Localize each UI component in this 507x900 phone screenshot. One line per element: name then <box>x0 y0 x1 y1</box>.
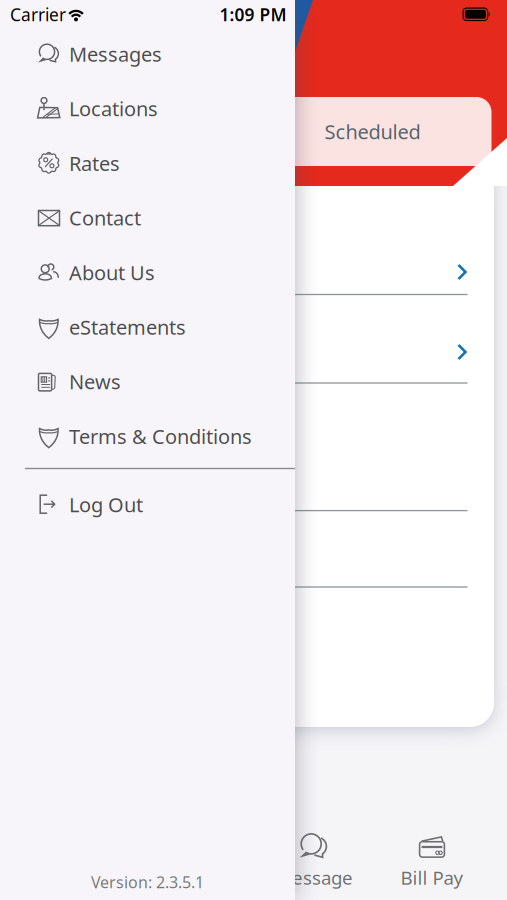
staticText: Rates <box>69 150 120 176</box>
button[interactable]: Message <box>258 825 370 897</box>
staticText: News <box>69 368 121 395</box>
button[interactable]: Bill Pay <box>376 825 488 897</box>
staticText: Locations <box>69 95 158 122</box>
staticText: Accounts <box>30 865 111 890</box>
button[interactable]: Log Out <box>0 477 295 532</box>
button[interactable]: Select account <box>32 295 467 382</box>
button[interactable]: News <box>0 354 295 409</box>
staticText: Contact <box>69 204 141 231</box>
button[interactable]: Select payee <box>32 231 467 294</box>
staticText: Terms & Conditions <box>69 423 252 449</box>
button[interactable]: Messages <box>0 27 295 81</box>
button[interactable]: Terms & Conditions <box>0 409 295 463</box>
staticText: About Us <box>69 259 155 286</box>
button[interactable]: Accounts <box>15 825 127 897</box>
button[interactable]: Locations <box>0 81 295 136</box>
staticText: Transfer <box>158 865 230 890</box>
button[interactable]: Scheduled <box>254 97 491 166</box>
staticText: Message <box>275 865 353 890</box>
staticText: Log Out <box>69 491 143 518</box>
staticText: Version: 2.3.5.1 <box>91 871 204 893</box>
button[interactable]: Transfer <box>138 825 250 897</box>
button[interactable]: About Us <box>0 245 295 300</box>
button[interactable]: eStatements <box>0 300 295 354</box>
staticText: eStatements <box>69 314 186 340</box>
staticText: 1:09 PM <box>219 3 286 26</box>
staticText: Carrier <box>10 3 66 26</box>
button[interactable]: Rates <box>0 136 295 190</box>
button[interactable]: Contact <box>0 190 295 245</box>
staticText: Messages <box>69 41 162 67</box>
staticText: Scheduled <box>325 118 421 145</box>
staticText: Bill Pay <box>400 865 463 890</box>
